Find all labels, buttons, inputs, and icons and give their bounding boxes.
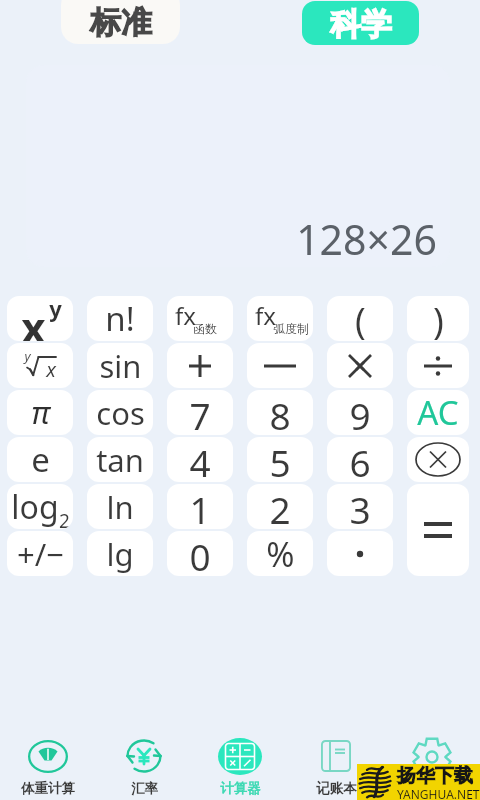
staticText: +/−	[17, 533, 64, 575]
staticText: 科学	[330, 5, 392, 44]
button[interactable]: %	[247, 531, 313, 576]
button[interactable]: Equals	[407, 484, 469, 576]
staticText: AC	[417, 390, 459, 435]
button[interactable]: 体重计算	[0, 726, 96, 800]
staticText: 体重计算	[21, 780, 75, 797]
staticText: fx	[255, 299, 276, 332]
button[interactable]: 4	[167, 437, 233, 482]
button[interactable]: 9	[327, 390, 393, 435]
button[interactable]: 0	[167, 531, 233, 576]
button[interactable]: +/−	[7, 531, 73, 576]
staticText: 6	[349, 437, 371, 482]
button[interactable]: n!	[87, 296, 153, 341]
staticText: sin	[99, 345, 142, 387]
staticText: y	[49, 296, 62, 323]
staticText: π	[31, 391, 50, 433]
button[interactable]: Multiply	[327, 343, 393, 388]
staticText: x	[21, 298, 46, 341]
staticText: 标准	[90, 3, 152, 42]
staticText: 3	[349, 484, 371, 529]
staticText: 汇率	[131, 780, 158, 797]
button[interactable]: )	[407, 296, 469, 341]
button[interactable]: 记账本	[288, 726, 384, 800]
staticText: e	[31, 437, 50, 482]
button[interactable]: e	[7, 437, 73, 482]
staticText: 记账本	[316, 780, 357, 797]
button[interactable]: lg	[87, 531, 153, 576]
button[interactable]: Decimal point	[327, 531, 393, 576]
button[interactable]: fx	[247, 296, 313, 341]
button[interactable]: fx	[167, 296, 233, 341]
button[interactable]: 计算器	[192, 726, 288, 800]
button[interactable]: x	[7, 296, 73, 341]
button[interactable]: 设置	[384, 726, 480, 800]
staticText: ln	[106, 486, 134, 528]
staticText: %	[266, 531, 295, 576]
staticText: lg	[106, 533, 134, 575]
button[interactable]: cos	[87, 390, 153, 435]
button[interactable]: Backspace	[407, 437, 469, 482]
staticText: 函数	[193, 321, 217, 336]
staticText: y	[24, 347, 31, 365]
button[interactable]: 1	[167, 484, 233, 529]
button[interactable]: Plus	[167, 343, 233, 388]
staticText: 设置	[419, 780, 446, 797]
staticText: 1	[189, 484, 211, 529]
staticText: 128×26	[296, 211, 437, 267]
staticText: 5	[269, 437, 291, 482]
staticText: 4	[189, 437, 211, 482]
staticText: tan	[96, 439, 144, 481]
staticText: (	[355, 296, 366, 341]
staticText: fx	[175, 299, 196, 332]
staticText: 9	[349, 390, 371, 435]
button[interactable]: 2	[247, 484, 313, 529]
button[interactable]: Minus	[247, 343, 313, 388]
button[interactable]: 5	[247, 437, 313, 482]
button[interactable]: Divide	[407, 343, 469, 388]
staticText: )	[433, 296, 444, 341]
button[interactable]: ln	[87, 484, 153, 529]
button[interactable]: 6	[327, 437, 393, 482]
button[interactable]: tan	[87, 437, 153, 482]
button[interactable]: sin	[87, 343, 153, 388]
staticText: log	[11, 485, 59, 529]
staticText: 2	[59, 508, 70, 529]
button[interactable]: 标准	[61, 0, 180, 44]
staticText: 弧度制	[273, 321, 309, 336]
button[interactable]: π	[7, 390, 73, 435]
button[interactable]: (	[327, 296, 393, 341]
staticText: 8	[269, 390, 291, 435]
staticText: YANGHUA.NET	[397, 786, 480, 800]
button[interactable]: 汇率	[96, 726, 192, 800]
button[interactable]: 7	[167, 390, 233, 435]
staticText: 0	[189, 531, 211, 576]
staticText: 2	[269, 484, 291, 529]
staticText: 7	[189, 390, 211, 435]
staticText: x	[46, 356, 56, 383]
staticText: 扬华下载	[397, 764, 473, 788]
button[interactable]: AC	[407, 390, 469, 435]
staticText: cos	[96, 392, 145, 434]
button[interactable]: 3	[327, 484, 393, 529]
staticText: n!	[105, 296, 135, 341]
button[interactable]: y	[7, 343, 73, 388]
button[interactable]: 8	[247, 390, 313, 435]
staticText: 计算器	[220, 780, 261, 797]
button[interactable]: 科学	[302, 1, 419, 45]
button[interactable]: log	[7, 484, 73, 529]
